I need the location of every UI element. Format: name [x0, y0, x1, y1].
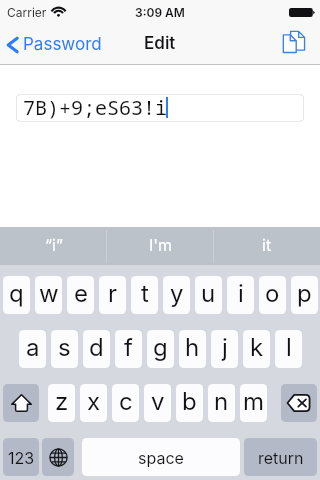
button[interactable]: space: [82, 438, 240, 476]
button[interactable]: Copy password: [274, 21, 314, 62]
button[interactable]: l: [275, 330, 302, 368]
staticText: a: [26, 333, 40, 362]
staticText: u: [201, 279, 216, 308]
staticText: f: [124, 333, 133, 362]
staticText: n: [214, 387, 229, 416]
staticText: I'm: [149, 235, 173, 254]
button[interactable]: it: [213, 227, 320, 265]
staticText: l: [286, 333, 292, 362]
staticText: t: [141, 279, 149, 308]
button[interactable]: “i”: [0, 227, 107, 265]
staticText: w: [39, 279, 59, 308]
staticText: q: [9, 279, 24, 308]
staticText: d: [89, 333, 104, 362]
button[interactable]: t: [131, 276, 158, 314]
button[interactable]: f: [115, 330, 142, 368]
button[interactable]: w: [35, 276, 62, 314]
button[interactable]: e: [67, 276, 94, 314]
button[interactable]: 123: [3, 438, 39, 476]
staticText: p: [297, 279, 312, 308]
staticText: Edit: [144, 33, 176, 54]
staticText: y: [170, 279, 184, 308]
staticText: m: [243, 387, 265, 416]
button[interactable]: n: [208, 384, 235, 422]
staticText: i: [238, 279, 244, 308]
staticText: it: [262, 235, 272, 254]
staticText: Carrier: [7, 5, 47, 20]
staticText: b: [182, 387, 197, 416]
staticText: return: [258, 448, 304, 467]
staticText: v: [151, 387, 165, 416]
button[interactable]: I'm: [107, 227, 214, 265]
button[interactable]: Backspace: [281, 384, 317, 422]
button[interactable]: p: [291, 276, 318, 314]
staticText: 7B)+9;eS63!i: [23, 94, 167, 121]
staticText: g: [153, 333, 168, 362]
staticText: r: [108, 279, 118, 308]
button[interactable]: v: [144, 384, 171, 422]
button[interactable]: Shift: [3, 384, 39, 422]
button[interactable]: a: [19, 330, 46, 368]
button[interactable]: y: [163, 276, 190, 314]
button[interactable]: 7B)+9;eS63!i: [16, 94, 304, 122]
staticText: s: [58, 333, 71, 362]
button[interactable]: Password: [6, 24, 102, 65]
staticText: “i”: [45, 235, 63, 254]
button[interactable]: k: [243, 330, 270, 368]
staticText: h: [185, 333, 200, 362]
staticText: c: [119, 387, 133, 416]
button[interactable]: b: [176, 384, 203, 422]
staticText: z: [55, 387, 69, 416]
button[interactable]: m: [240, 384, 267, 422]
button[interactable]: x: [80, 384, 107, 422]
button[interactable]: s: [51, 330, 78, 368]
button[interactable]: o: [259, 276, 286, 314]
staticText: space: [138, 448, 184, 467]
staticText: Password: [23, 34, 102, 55]
button[interactable]: i: [227, 276, 254, 314]
button[interactable]: u: [195, 276, 222, 314]
staticText: j: [222, 333, 228, 362]
staticText: 3:09 AM: [135, 5, 185, 20]
button[interactable]: j: [211, 330, 238, 368]
button[interactable]: return: [244, 438, 317, 476]
button[interactable]: r: [99, 276, 126, 314]
staticText: e: [74, 279, 88, 308]
button[interactable]: q: [3, 276, 30, 314]
button[interactable]: c: [112, 384, 139, 422]
button[interactable]: Switch keyboard: [42, 438, 74, 476]
staticText: x: [87, 387, 101, 416]
staticText: 123: [8, 448, 35, 467]
button[interactable]: d: [83, 330, 110, 368]
staticText: o: [265, 279, 280, 308]
button[interactable]: z: [48, 384, 75, 422]
staticText: k: [250, 333, 264, 362]
button[interactable]: g: [147, 330, 174, 368]
button[interactable]: h: [179, 330, 206, 368]
